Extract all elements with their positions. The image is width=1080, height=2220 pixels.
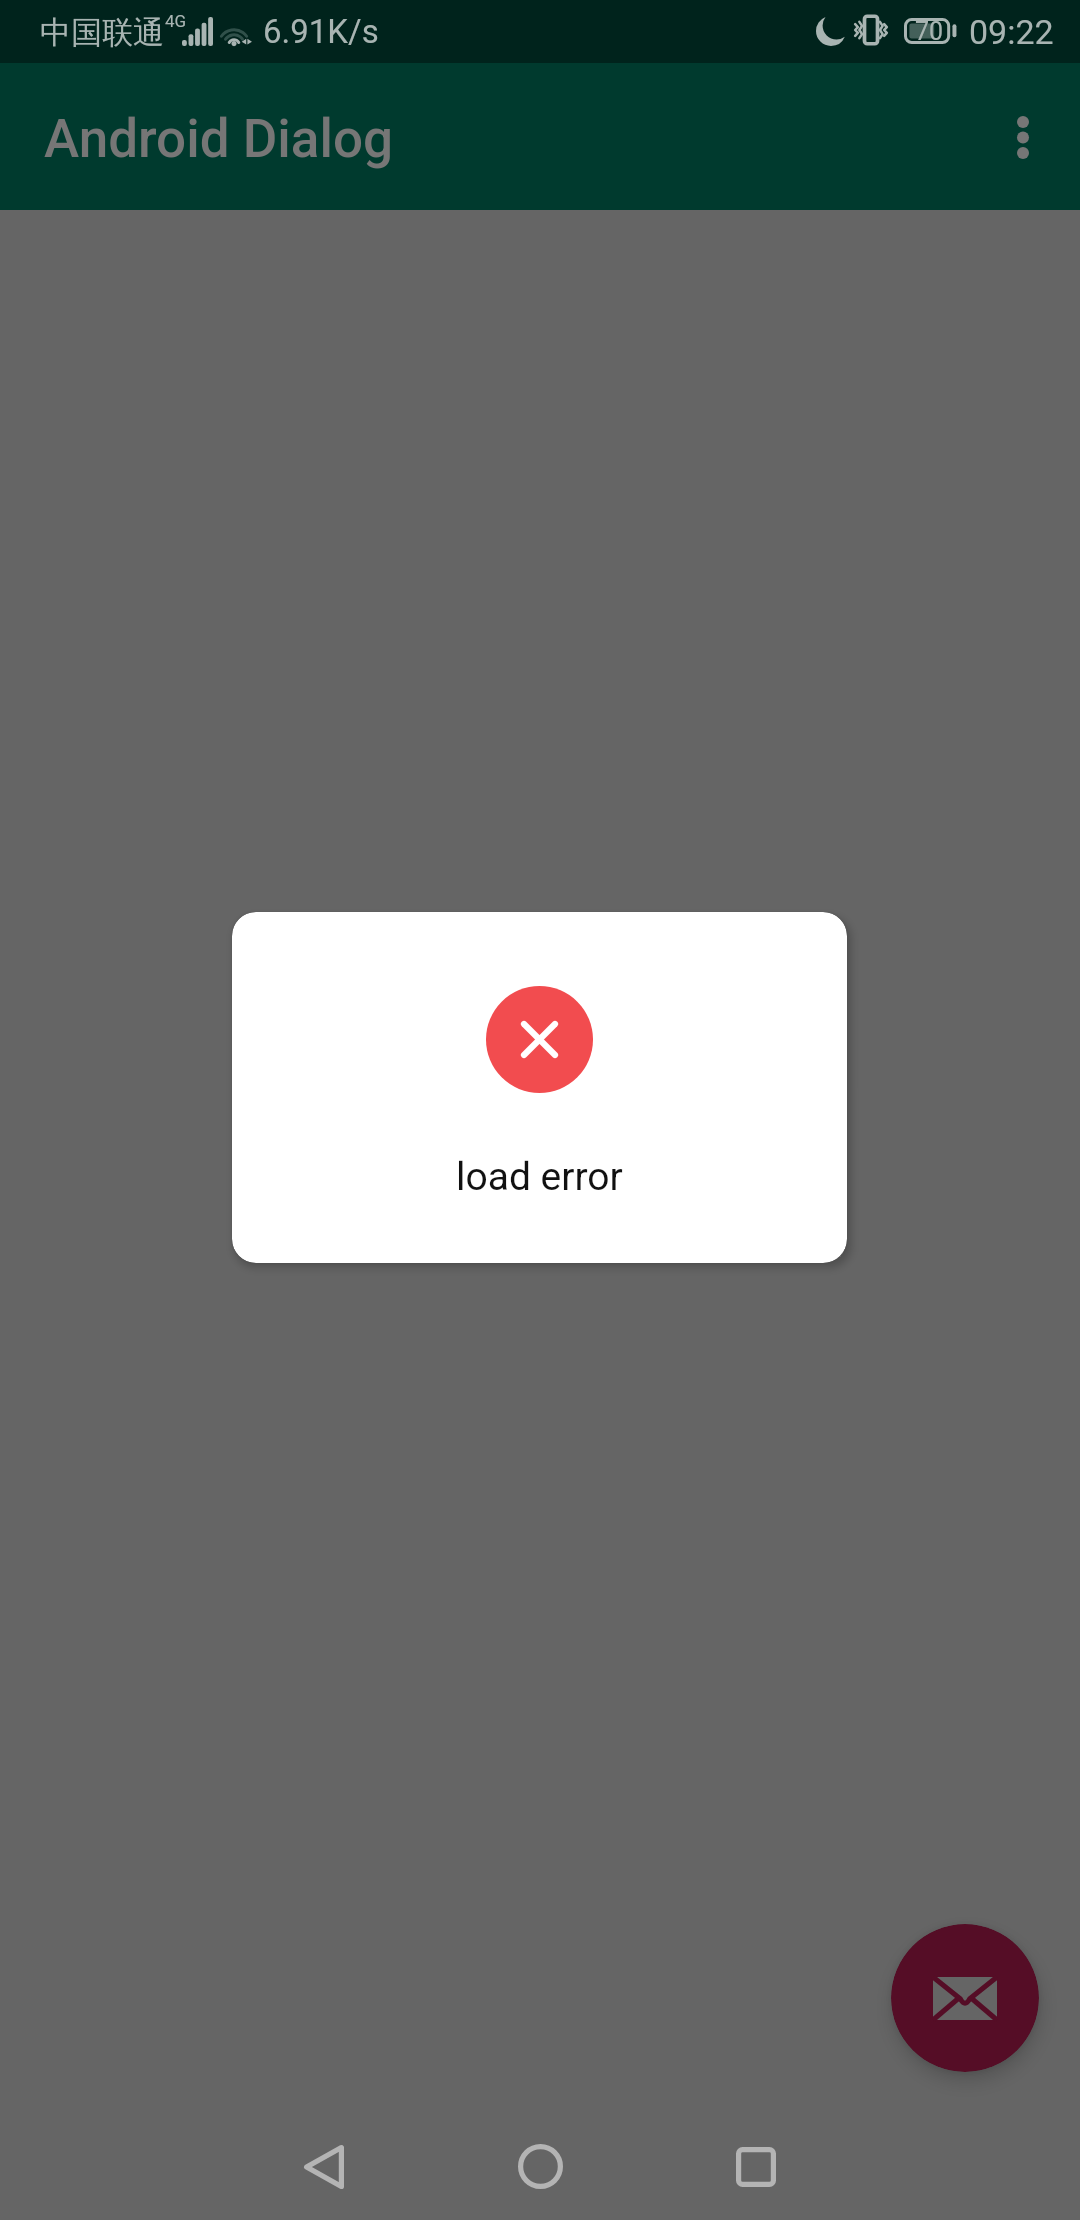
button[interactable]: Back <box>251 2125 396 2209</box>
button[interactable]: More options <box>975 89 1071 185</box>
staticText: 中国联通 <box>40 13 164 52</box>
button[interactable]: Home <box>468 2124 613 2208</box>
staticText: 09:22 <box>969 12 1054 52</box>
staticText: 70 <box>915 17 944 43</box>
button[interactable]: Recent apps <box>683 2125 828 2209</box>
button[interactable]: load error <box>232 912 847 1263</box>
staticText: 6.91K/s <box>263 12 379 51</box>
staticText: 4G <box>165 11 187 31</box>
staticText: load error <box>456 1154 623 1200</box>
button[interactable]: Send mail <box>891 1924 1039 2072</box>
staticText: Android Dialog <box>44 108 394 170</box>
